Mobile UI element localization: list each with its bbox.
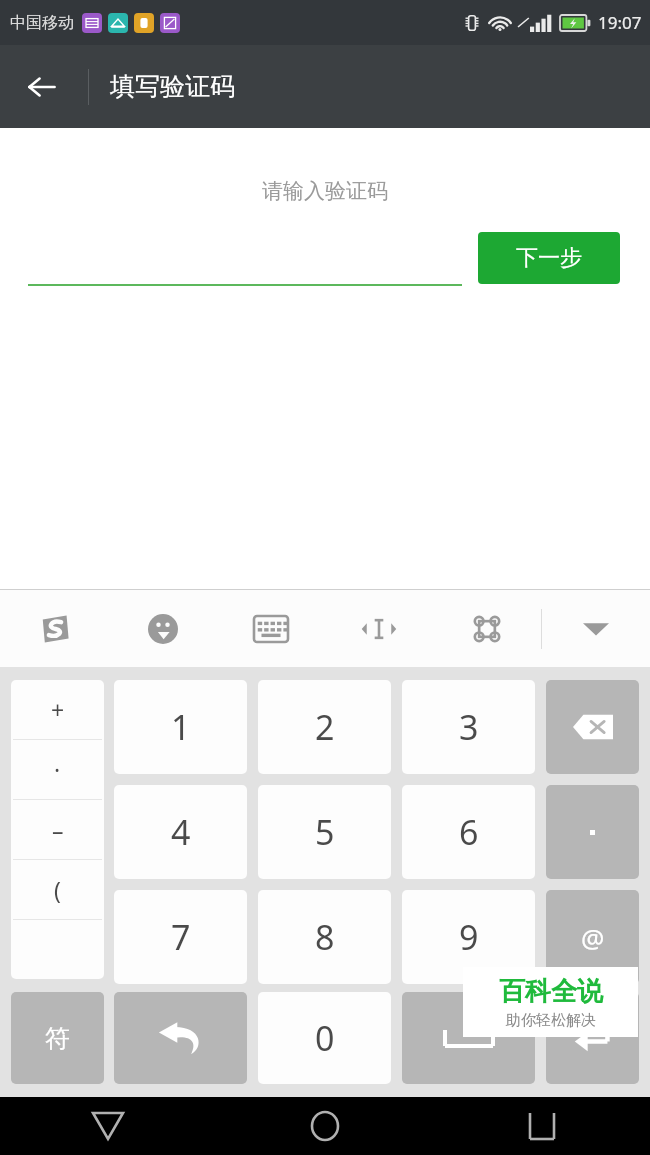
staticText: 0	[315, 1015, 335, 1061]
button[interactable]: 9	[402, 890, 535, 984]
button[interactable]: 下一步	[478, 232, 620, 284]
staticText: 8	[315, 914, 335, 960]
button[interactable]: Settings	[433, 590, 541, 667]
staticText: 5	[315, 809, 335, 855]
staticText: 中国移动	[10, 13, 74, 33]
button[interactable]: Enter	[546, 992, 639, 1084]
staticText: @	[581, 920, 605, 955]
staticText: 1	[171, 704, 191, 750]
button[interactable]: Dot	[546, 785, 639, 879]
staticText: –	[52, 814, 64, 845]
button[interactable]: Keyboard layout	[217, 590, 325, 667]
button[interactable]: Space	[402, 992, 535, 1084]
staticText: 19:07	[598, 11, 642, 34]
button[interactable]: 5	[258, 785, 391, 879]
staticText: 2	[315, 704, 335, 750]
button[interactable]: 1	[114, 680, 247, 774]
button[interactable]: Symbols column	[11, 680, 104, 979]
button[interactable]: Backspace	[546, 680, 639, 774]
staticText: 下一步	[516, 244, 582, 272]
button[interactable]: Recent apps	[433, 1097, 650, 1155]
button[interactable]: 6	[402, 785, 535, 879]
button[interactable]: Sogou input	[0, 590, 109, 667]
button[interactable]: 7	[114, 890, 247, 984]
staticText: 请输入验证码	[262, 178, 388, 204]
button[interactable]: 3	[402, 680, 535, 774]
staticText: 7	[171, 914, 191, 960]
staticText: 9	[459, 914, 479, 960]
staticText: 6	[459, 809, 479, 855]
button[interactable]: At sign	[546, 890, 639, 984]
button[interactable]: Hide keyboard	[542, 590, 650, 667]
button[interactable]: Return arrow	[114, 992, 247, 1084]
staticText: 填写验证码	[110, 71, 235, 102]
button[interactable]: Back	[14, 59, 70, 115]
button[interactable]: 4	[114, 785, 247, 879]
button[interactable]: Cursor move	[325, 590, 433, 667]
button[interactable]: 8	[258, 890, 391, 984]
button[interactable]: Back	[0, 1097, 216, 1155]
staticText: +	[51, 694, 65, 725]
staticText: ·	[54, 754, 61, 785]
button[interactable]: 0	[258, 992, 391, 1084]
staticText: 符	[45, 1023, 70, 1054]
button[interactable]	[28, 283, 462, 323]
staticText: 3	[459, 704, 479, 750]
staticText: 百科全说	[499, 975, 603, 1008]
staticText: 4	[171, 809, 191, 855]
button[interactable]: Home	[216, 1097, 433, 1155]
staticText: 助你轻松解决	[506, 1011, 596, 1030]
button[interactable]: 符	[11, 992, 104, 1084]
button[interactable]: Emoji	[109, 590, 217, 667]
button[interactable]: 2	[258, 680, 391, 774]
staticText: (	[54, 874, 61, 905]
